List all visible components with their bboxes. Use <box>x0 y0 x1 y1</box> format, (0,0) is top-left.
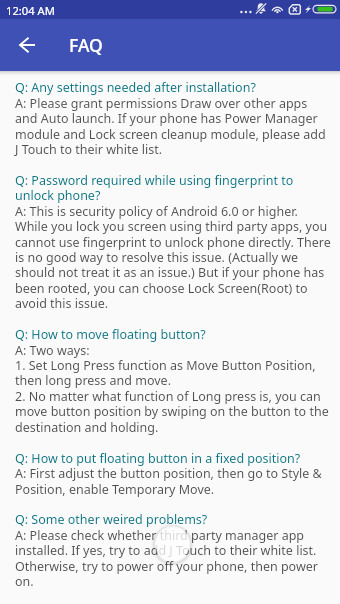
button[interactable]: Back <box>0 19 55 71</box>
staticText: been rooted, you can choose Lock Screen(… <box>15 280 308 297</box>
staticText: A: Two ways: <box>15 342 90 359</box>
staticText: Q: Some other weired problems? <box>15 511 208 528</box>
staticText: move button position by swiping on the b… <box>15 403 329 420</box>
staticText: A: Please grant permissions Draw over ot… <box>15 95 308 112</box>
staticText: Q: Password required while using fingerp… <box>15 172 294 189</box>
staticText: Q: How to put floating button in a fixed… <box>15 450 301 467</box>
staticText: Q: Any settings needed after installatio… <box>15 79 256 96</box>
staticText: on. <box>15 573 34 590</box>
staticText: Q: How to move floating button? <box>15 326 206 343</box>
staticText: While you lock you screen using third pa… <box>15 218 328 235</box>
staticText: unlock phone? <box>15 187 101 204</box>
staticText: A: Please check whether third party mana… <box>15 527 305 544</box>
staticText: A: First adjust the button position, the… <box>15 465 322 482</box>
staticText: then long press and move. <box>15 372 172 389</box>
staticText: should not treat it as an issue.) But if… <box>15 264 325 281</box>
staticText: Position, enable Temporary Move. <box>15 481 215 498</box>
staticText: J Touch to their white list. <box>15 141 163 158</box>
staticText: installed. If yes, try to add J Touch to… <box>15 542 317 559</box>
staticText: A: This is security policy of Android 6.… <box>15 203 298 220</box>
staticText: avoid this issue. <box>15 295 109 312</box>
staticText: destination and holding. <box>15 419 159 436</box>
staticText: and Auto launch. If your phone has Power… <box>15 110 318 127</box>
staticText: is no good way to resolve this issue. (A… <box>15 249 299 266</box>
staticText: 12:04 AM <box>6 3 55 18</box>
staticText: 1. Set Long Press function as Move Butto… <box>15 357 316 374</box>
staticText: module and Lock screen cleanup module, p… <box>15 126 326 143</box>
staticText: FAQ <box>69 33 103 57</box>
staticText: cannot use fingerprint to unlock phone d… <box>15 234 331 251</box>
staticText: Otherwise, try to power off your phone, … <box>15 558 318 575</box>
staticText: 2. No matter what function of Long press… <box>15 388 321 405</box>
